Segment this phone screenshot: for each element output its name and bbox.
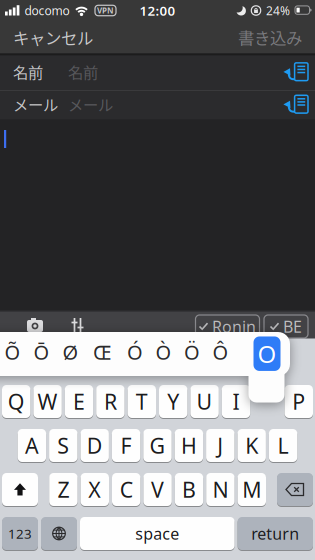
staticText: S: [57, 431, 69, 460]
button[interactable]: Delete: [277, 473, 313, 506]
staticText: Y: [167, 387, 179, 416]
staticText: O: [257, 338, 276, 370]
button[interactable]: Q: [2, 385, 30, 418]
staticText: C: [120, 475, 133, 504]
staticText: 123: [8, 525, 32, 542]
button[interactable]: キャンセル: [13, 25, 93, 49]
button[interactable]: Ò: [155, 339, 171, 365]
staticText: メール: [13, 93, 58, 115]
button[interactable]: Insert template: [282, 93, 308, 115]
staticText: W: [38, 387, 58, 416]
staticText: 名前: [13, 60, 43, 82]
button[interactable]: N: [206, 473, 235, 506]
button[interactable]: O: [253, 336, 280, 371]
button[interactable]: Œ: [93, 339, 112, 365]
staticText: Ō: [33, 339, 49, 365]
staticText: Ö: [184, 339, 200, 365]
button[interactable]: Õ: [4, 339, 20, 365]
button[interactable]: Ø: [62, 339, 78, 365]
button[interactable]: X: [81, 473, 109, 506]
button[interactable]: Insert template: [282, 61, 308, 83]
button[interactable]: Shift: [2, 473, 38, 506]
staticText: P: [292, 387, 305, 416]
button[interactable]: P: [285, 385, 313, 418]
button[interactable]: A: [18, 429, 46, 462]
button[interactable]: H: [175, 429, 203, 462]
button[interactable]: U: [190, 385, 219, 418]
button[interactable]: M: [238, 473, 266, 506]
staticText: 名前: [68, 60, 98, 82]
button[interactable]: Space: [80, 517, 235, 550]
button[interactable]: 名前: [0, 55, 315, 90]
button[interactable]: J: [206, 429, 234, 462]
button[interactable]: E: [65, 385, 93, 418]
button[interactable]: Next keyboard: [41, 517, 77, 550]
staticText: メール: [68, 93, 113, 115]
button[interactable]: 書き込み: [238, 25, 302, 49]
button[interactable]: L: [269, 429, 297, 462]
button[interactable]: Y: [159, 385, 187, 418]
button[interactable]: T: [128, 385, 156, 418]
staticText: F: [121, 431, 132, 460]
staticText: A: [25, 431, 39, 460]
staticText: BE: [283, 316, 302, 337]
button[interactable]: K: [237, 429, 266, 462]
button[interactable]: S: [49, 429, 77, 462]
staticText: V: [151, 475, 164, 504]
button[interactable]: F: [112, 429, 140, 462]
button[interactable]: BE: [264, 315, 308, 338]
staticText: Q: [8, 387, 25, 416]
staticText: 書き込み: [238, 25, 302, 49]
button[interactable]: Adjust: [70, 318, 84, 332]
staticText: return: [251, 523, 299, 544]
button[interactable]: R: [96, 385, 125, 418]
staticText: Œ: [93, 339, 112, 365]
staticText: I: [232, 387, 239, 416]
staticText: H: [181, 431, 197, 460]
button[interactable]: Ronin: [195, 315, 259, 338]
staticText: 24%: [266, 2, 290, 18]
staticText: T: [136, 387, 148, 416]
staticText: U: [197, 387, 213, 416]
staticText: docomo: [24, 2, 69, 18]
button[interactable]: メール: [0, 91, 315, 119]
staticText: Z: [57, 475, 69, 504]
staticText: Õ: [4, 339, 20, 365]
staticText: Ô: [212, 339, 228, 365]
button[interactable]: Ô: [212, 339, 228, 365]
staticText: L: [278, 431, 289, 460]
button[interactable]: Ō: [33, 339, 49, 365]
button[interactable]: I: [222, 385, 250, 418]
button[interactable]: Return: [238, 517, 313, 550]
button[interactable]: Camera: [27, 318, 43, 332]
staticText: D: [87, 431, 103, 460]
button[interactable]: Z: [49, 473, 78, 506]
staticText: E: [73, 387, 85, 416]
staticText: 12:00: [139, 2, 175, 19]
staticText: キャンセル: [13, 25, 93, 49]
staticText: Ronin: [212, 316, 256, 337]
button[interactable]: B: [175, 473, 203, 506]
button[interactable]: Numbers: [2, 517, 38, 550]
staticText: Ø: [62, 339, 78, 365]
staticText: Ò: [155, 339, 171, 365]
staticText: B: [182, 475, 196, 504]
button[interactable]: C: [112, 473, 140, 506]
staticText: G: [149, 431, 165, 460]
staticText: VPN: [97, 5, 114, 16]
staticText: J: [217, 431, 223, 460]
button[interactable]: W: [33, 385, 62, 418]
staticText: M: [242, 475, 261, 504]
button[interactable]: V: [143, 473, 172, 506]
staticText: K: [245, 431, 258, 460]
staticText: space: [135, 523, 179, 544]
button[interactable]: Ó: [127, 339, 143, 365]
staticText: X: [88, 475, 101, 504]
staticText: R: [104, 387, 117, 416]
staticText: N: [212, 475, 228, 504]
button[interactable]: G: [143, 429, 172, 462]
button[interactable]: D: [80, 429, 109, 462]
button[interactable]: Ö: [184, 339, 200, 365]
staticText: Ó: [127, 339, 143, 365]
